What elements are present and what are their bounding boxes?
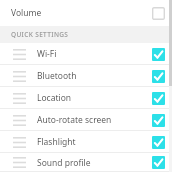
staticText: Volume [11, 7, 42, 19]
button[interactable]: Reorder Bluetooth [12, 65, 26, 87]
button[interactable]: Reorder Sound profile [0, 153, 172, 172]
button[interactable]: Reorder Wi-Fi [12, 43, 26, 65]
button[interactable]: Reorder Sound profile [12, 153, 26, 172]
button[interactable]: Reorder Bluetooth [0, 65, 172, 87]
button[interactable]: Reorder Auto-rotate screen [0, 109, 172, 131]
staticText: QUICK SETTINGS [11, 30, 69, 39]
staticText: Location [37, 92, 72, 104]
button[interactable]: Reorder Wi-Fi [0, 43, 172, 65]
staticText: Wi-Fi [37, 48, 57, 60]
staticText: Flashlight [37, 136, 76, 148]
staticText: Auto-rotate screen [37, 114, 112, 126]
button[interactable]: Reorder Flashlight [0, 131, 172, 153]
staticText: Sound profile [37, 157, 91, 169]
staticText: Bluetooth [37, 70, 77, 82]
button[interactable]: Reorder Location [0, 87, 172, 109]
button[interactable]: Reorder Flashlight [12, 131, 26, 153]
button[interactable]: Reorder Location [12, 87, 26, 109]
button[interactable]: Reorder Auto-rotate screen [12, 109, 26, 131]
button[interactable]: Volume [0, 0, 172, 26]
